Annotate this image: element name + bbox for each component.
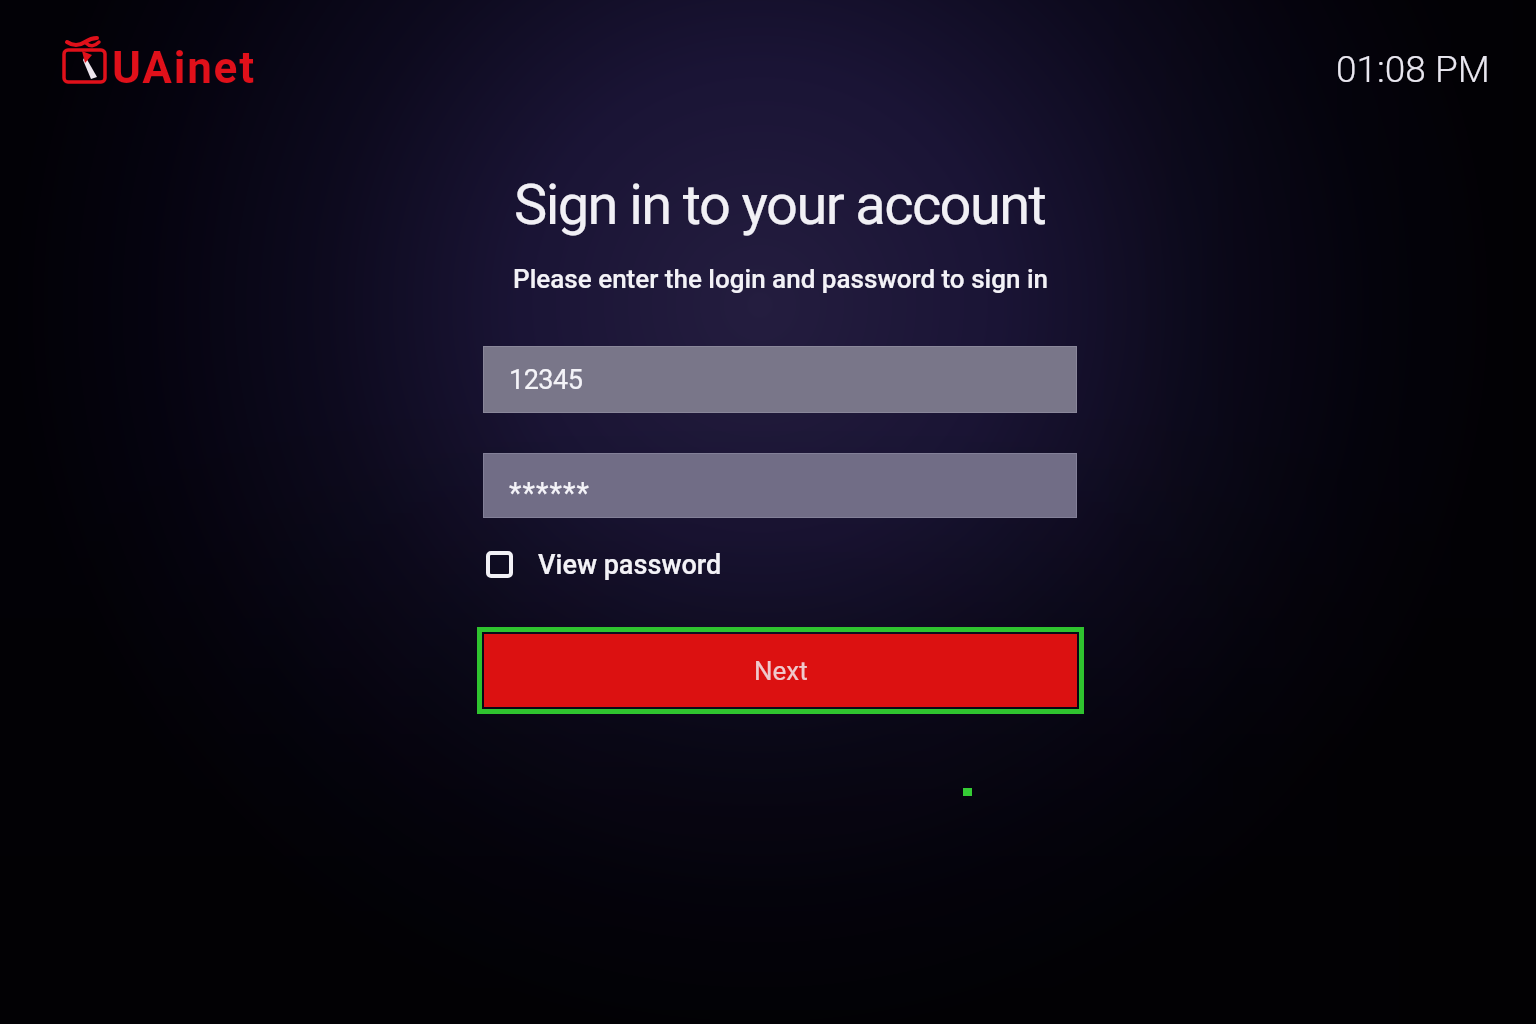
- staticText: 12345: [509, 364, 583, 396]
- button[interactable]: ******: [483, 453, 1077, 518]
- staticText: ******: [509, 476, 590, 510]
- button[interactable]: View password: [538, 548, 722, 582]
- staticText: View password: [538, 549, 722, 581]
- button[interactable]: Next: [477, 627, 1084, 714]
- button[interactable]: 12345: [483, 346, 1077, 413]
- staticText: 01:08 PM: [1336, 48, 1490, 91]
- staticText: Next: [754, 656, 808, 686]
- staticText: Please enter the login and password to s…: [513, 264, 1049, 294]
- staticText: Sign in to your account: [514, 172, 1046, 238]
- button[interactable]: [486, 551, 513, 578]
- staticText: UAinet: [112, 42, 256, 94]
